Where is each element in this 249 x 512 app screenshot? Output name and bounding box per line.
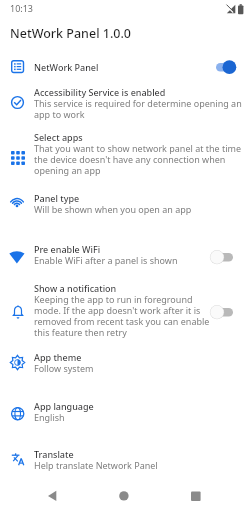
button[interactable]: App theme <box>0 349 249 377</box>
staticText: Will be shown when you open an app <box>34 203 192 215</box>
button[interactable] <box>115 487 133 505</box>
staticText: App theme <box>34 351 82 363</box>
staticText: Select apps <box>34 131 83 143</box>
button[interactable] <box>212 56 240 78</box>
staticText: English <box>34 411 65 423</box>
button[interactable]: Show a notification <box>0 280 249 335</box>
staticText: Keeping the app to run in foreground mod… <box>34 293 210 338</box>
staticText: Accessibility Service is enabled <box>34 86 166 98</box>
staticText: This service is required for determine o… <box>34 97 242 120</box>
button[interactable]: NetWork Panel <box>0 55 249 80</box>
staticText: Translate <box>34 448 74 460</box>
staticText: NetWork Panel <box>34 61 99 73</box>
button[interactable] <box>209 301 237 323</box>
staticText: Show a notification <box>34 282 117 294</box>
staticText: App language <box>34 400 94 412</box>
staticText: Panel type <box>34 192 80 204</box>
staticText: Follow system <box>34 362 94 374</box>
button[interactable]: Select apps <box>0 129 249 179</box>
button[interactable] <box>182 487 202 507</box>
button[interactable] <box>209 246 237 268</box>
staticText: Pre enable WiFi <box>34 243 101 255</box>
button[interactable] <box>44 487 62 505</box>
staticText: Help translate Network Panel <box>34 459 158 471</box>
button[interactable]: Panel type <box>0 190 249 218</box>
staticText: That you want to show network panel at t… <box>34 142 242 176</box>
button[interactable]: Translate <box>0 446 249 474</box>
staticText: NetWork Panel 1.0.0 <box>10 25 132 42</box>
button[interactable]: App language <box>0 398 249 426</box>
staticText: 10:13 <box>10 2 34 14</box>
staticText: Enable WiFi after a panel is shown <box>34 254 178 266</box>
button[interactable]: Accessibility Service is enabled <box>0 84 249 122</box>
button[interactable]: Pre enable WiFi <box>0 241 249 269</box>
